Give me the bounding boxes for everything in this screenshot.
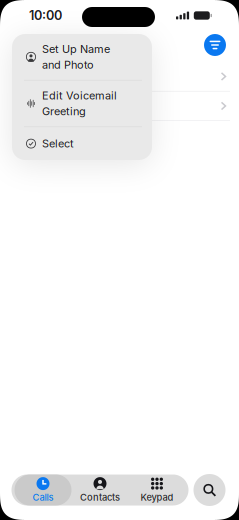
staticText: 10:00 — [29, 8, 62, 23]
staticText: Greeting — [42, 105, 86, 118]
button[interactable]: Call record — [0, 62, 239, 91]
button[interactable]: Keypad — [128, 474, 185, 505]
button[interactable]: Select — [12, 127, 152, 160]
staticText: Keypad — [140, 492, 173, 503]
staticText: Set Up Name — [42, 42, 110, 56]
button[interactable]: Calls — [14, 474, 71, 505]
staticText: Edit Voicemail — [42, 89, 117, 102]
button[interactable]: Edit Voicemail — [12, 80, 152, 126]
staticText: Calls — [32, 492, 53, 503]
button[interactable]: Set Up Name — [12, 34, 152, 80]
button[interactable]: Search — [193, 474, 225, 506]
button[interactable]: Call record — [0, 91, 239, 121]
staticText: and Photo — [42, 58, 94, 71]
button[interactable]: Filter calls — [204, 34, 226, 56]
button[interactable]: Contacts — [71, 474, 128, 505]
staticText: Contacts — [80, 492, 120, 503]
staticText: Select — [42, 137, 74, 150]
